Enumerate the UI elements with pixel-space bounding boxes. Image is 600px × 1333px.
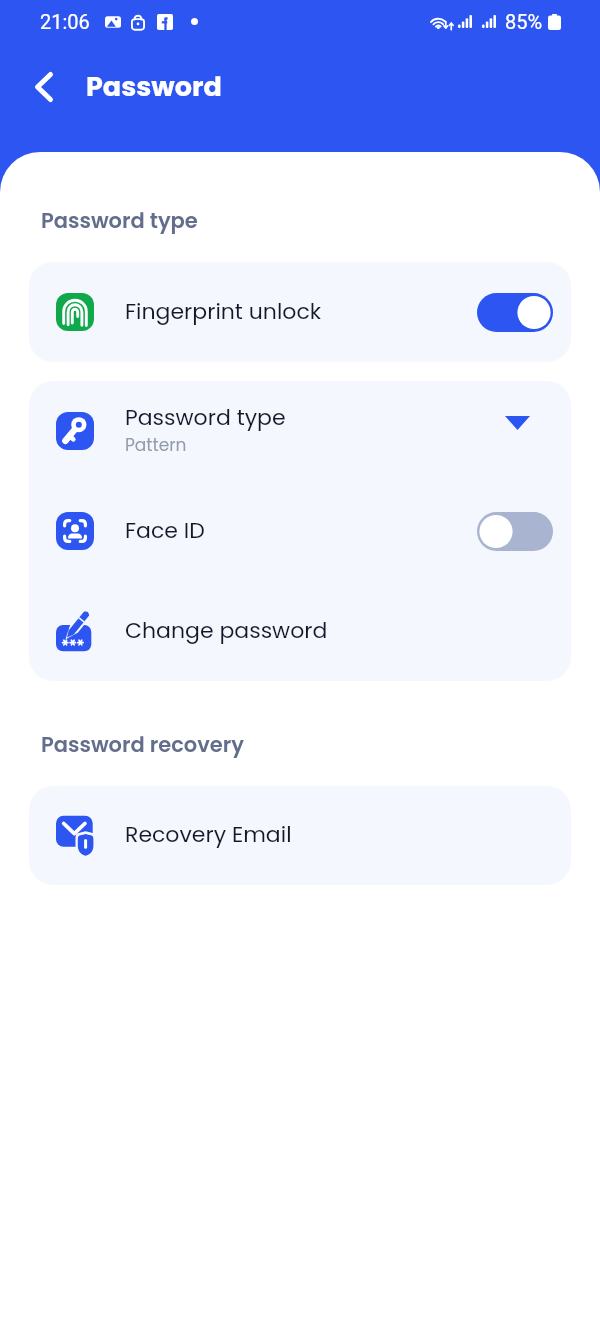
- button[interactable]: Toggle on: [477, 293, 553, 332]
- staticText: Change password: [125, 615, 328, 646]
- button[interactable]: Password type: [29, 381, 571, 481]
- staticText: Password recovery: [41, 730, 244, 759]
- staticText: Fingerprint unlock: [125, 296, 322, 327]
- staticText: Pattern: [125, 433, 187, 457]
- staticText: Password type: [41, 206, 198, 235]
- button[interactable]: Toggle off: [477, 512, 553, 551]
- button[interactable]: Change password: [29, 581, 571, 681]
- button[interactable]: Expand: [482, 401, 553, 445]
- staticText: Recovery Email: [125, 819, 292, 850]
- staticText: Face ID: [125, 515, 205, 546]
- button[interactable]: Face ID: [29, 481, 571, 581]
- staticText: 21:06: [40, 10, 90, 33]
- staticText: Password type: [125, 402, 286, 433]
- staticText: Password: [86, 68, 222, 106]
- button[interactable]: Back: [20, 64, 68, 110]
- staticText: 85%: [505, 10, 543, 33]
- button[interactable]: Recovery Email: [29, 786, 571, 885]
- button[interactable]: Fingerprint unlock: [29, 262, 571, 362]
